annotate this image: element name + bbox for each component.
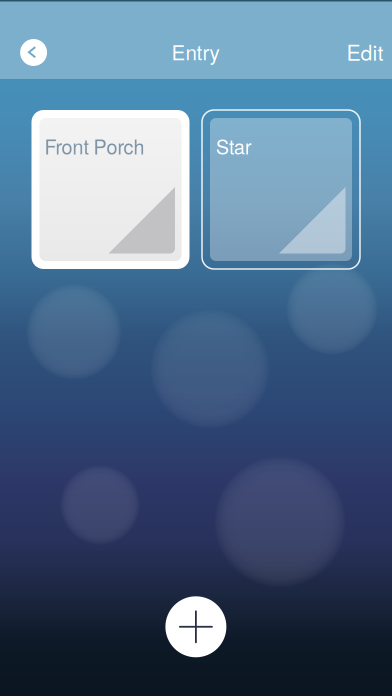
staticText: Front Porch (45, 132, 145, 160)
button[interactable]: Edit (327, 29, 383, 73)
button[interactable]: Add (165, 596, 226, 657)
staticText: Star (216, 132, 252, 160)
button[interactable]: Back (12, 30, 56, 74)
button[interactable]: Front Porch (31, 110, 189, 269)
staticText: Entry (171, 37, 219, 66)
staticText: Edit (346, 36, 383, 67)
button[interactable]: Star (202, 110, 360, 269)
